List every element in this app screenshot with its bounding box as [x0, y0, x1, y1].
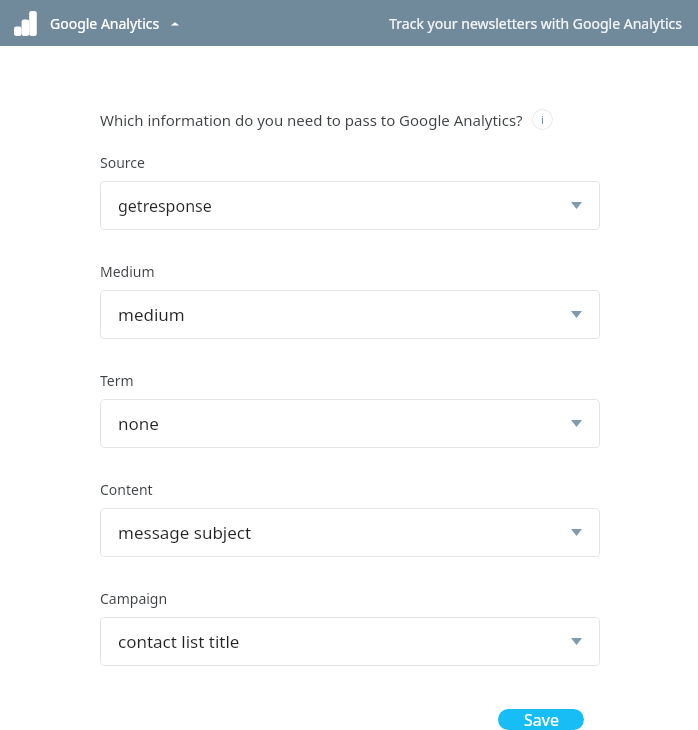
- other: Collapse menu: [170, 19, 180, 29]
- button[interactable]: medium: [100, 290, 600, 339]
- other: Google Analytics logo: [14, 11, 37, 36]
- staticText: Google Analytics: [50, 14, 160, 33]
- staticText: getresponse: [118, 195, 212, 217]
- button[interactable]: Save: [498, 709, 584, 730]
- staticText: Which information do you need to pass to…: [100, 110, 523, 130]
- staticText: medium: [118, 303, 185, 326]
- staticText: Campaign: [100, 589, 168, 608]
- button[interactable]: getresponse: [100, 181, 600, 230]
- staticText: i: [541, 112, 544, 127]
- staticText: Save: [524, 709, 559, 730]
- button[interactable]: none: [100, 399, 600, 448]
- staticText: none: [118, 412, 159, 435]
- staticText: Source: [100, 153, 145, 172]
- button[interactable]: Google Analytics logo: [14, 11, 180, 36]
- staticText: message subject: [118, 521, 252, 544]
- button[interactable]: contact list title: [100, 617, 600, 666]
- button[interactable]: message subject: [100, 508, 600, 557]
- staticText: Track your newsletters with Google Analy…: [389, 14, 682, 33]
- staticText: Content: [100, 480, 153, 499]
- staticText: contact list title: [118, 630, 240, 653]
- staticText: Term: [100, 371, 134, 390]
- button[interactable]: More information: [532, 109, 553, 130]
- staticText: Medium: [100, 262, 155, 281]
